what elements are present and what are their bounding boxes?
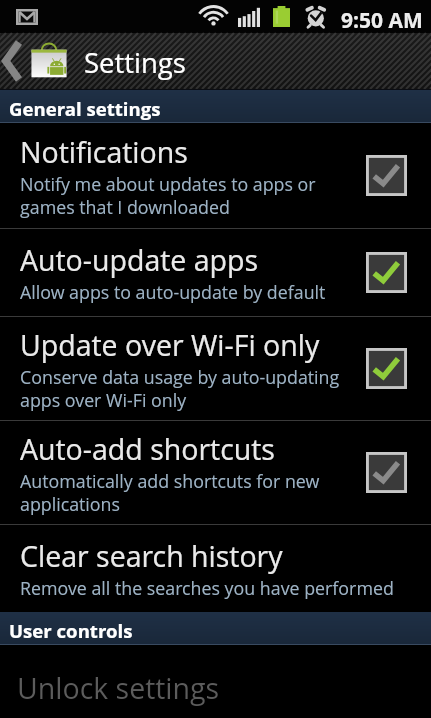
staticText: Clear search history [20,537,283,576]
staticText: Unlock settings [17,669,220,708]
staticText: User controls [9,618,133,643]
button[interactable]: Notifications [0,123,431,228]
button[interactable]: Unchecked [366,155,407,196]
staticText: Remove all the searches you have perform… [20,576,394,600]
button[interactable]: Clear search history [0,525,431,612]
staticText: Notify me about updates to apps or games… [20,172,366,219]
button[interactable]: Unlock settings [0,645,431,718]
staticText: Automatically add shortcuts for new appl… [20,469,366,516]
staticText: Allow apps to auto-update by default [20,280,326,304]
button[interactable]: Auto-add shortcuts [0,421,431,524]
button[interactable]: Checked [366,348,407,389]
staticText: Auto-update apps [20,241,259,280]
button[interactable]: Auto-update apps [0,229,431,316]
staticText: 9:50 AM [341,6,423,35]
button[interactable]: Unchecked [366,452,407,493]
staticText: Conserve data usage by auto-updating app… [20,365,366,412]
staticText: Auto-add shortcuts [20,430,275,469]
button[interactable]: Checked [366,252,407,293]
staticText: Notifications [20,133,188,172]
staticText: Settings [84,44,186,81]
button[interactable]: Back [0,33,26,89]
staticText: General settings [9,96,161,121]
staticText: Update over Wi-Fi only [20,326,320,365]
button[interactable]: Update over Wi-Fi only [0,317,431,420]
